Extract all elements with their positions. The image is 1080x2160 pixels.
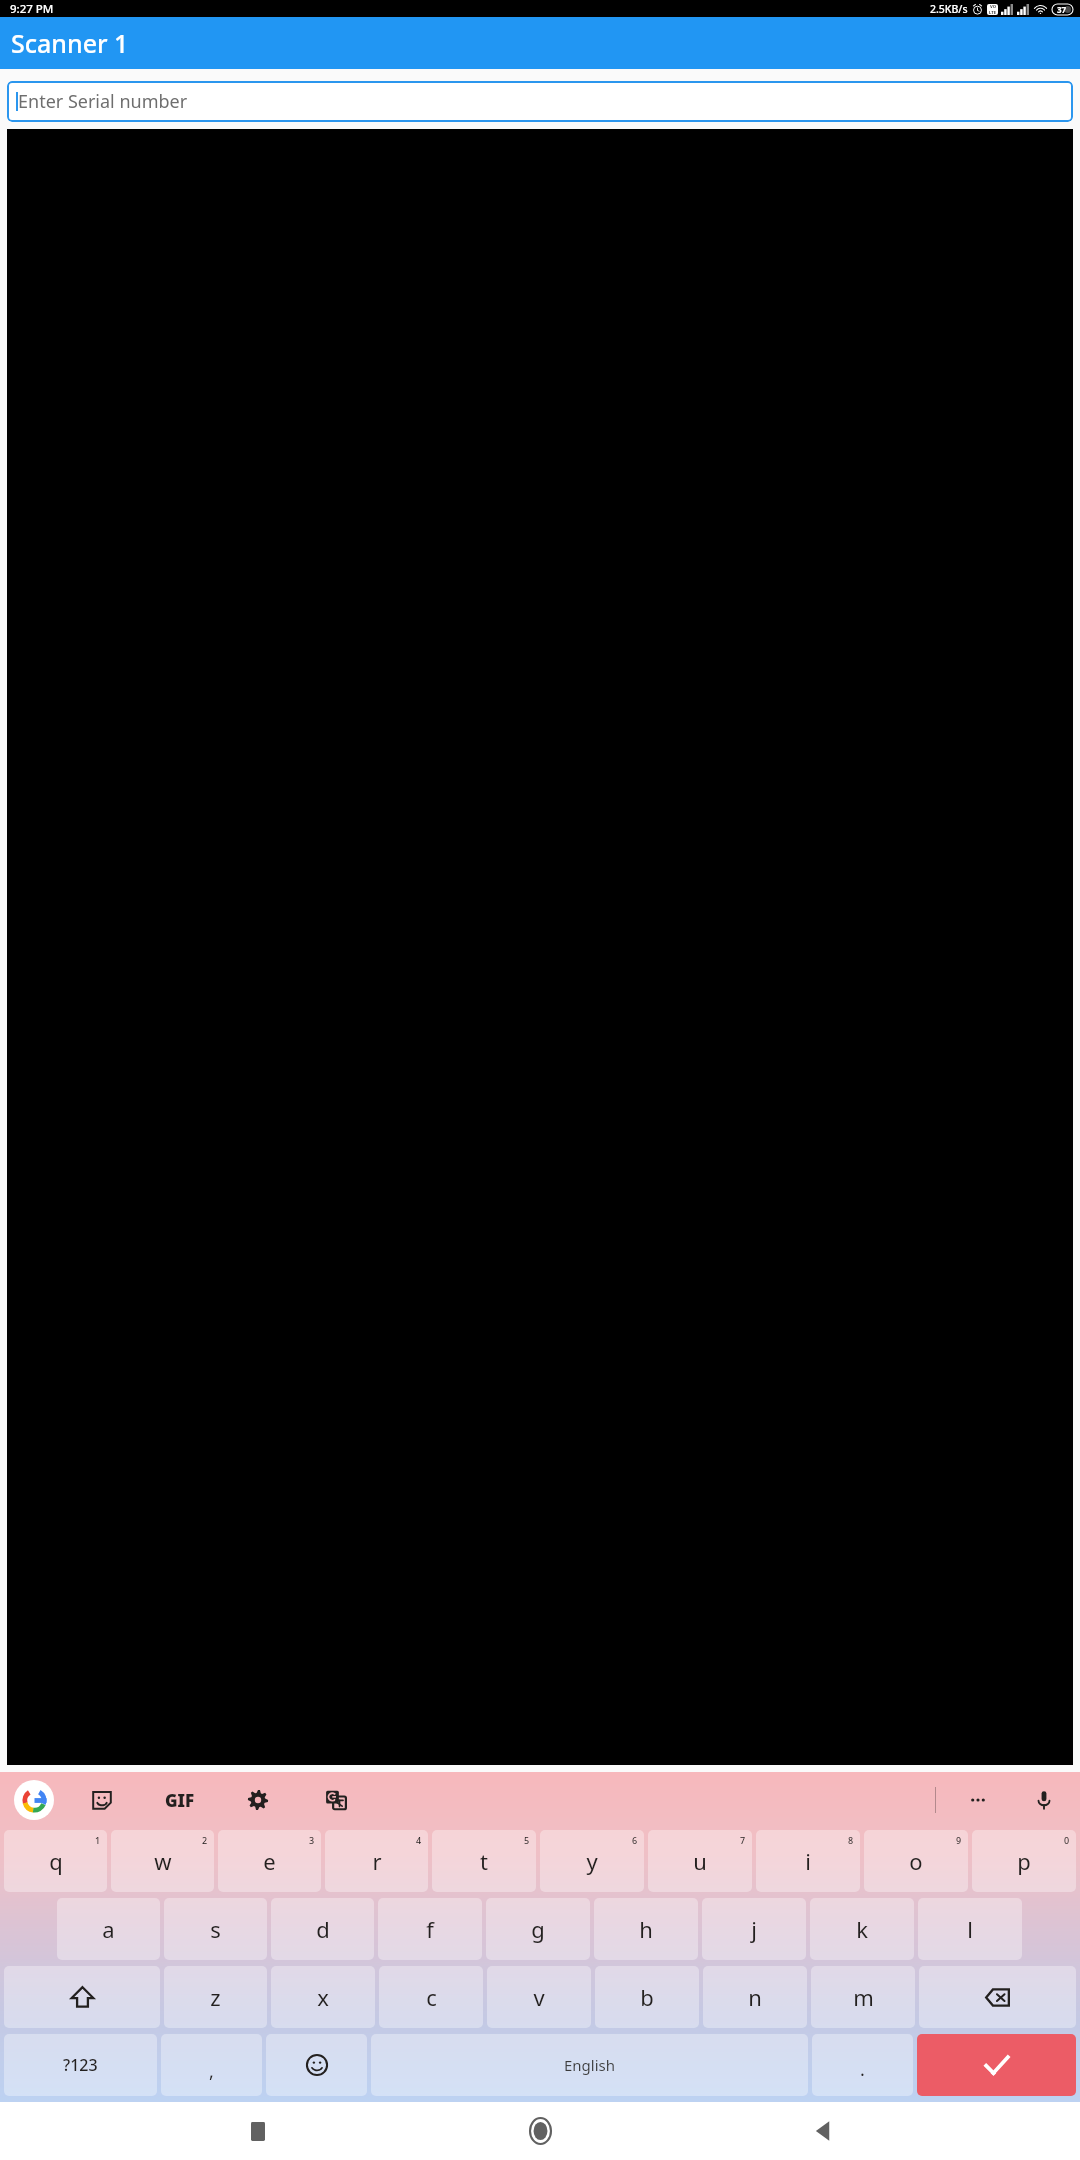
button[interactable]: u — [648, 1830, 752, 1892]
button[interactable]: GIF — [160, 1780, 200, 1820]
staticText: k — [856, 1914, 868, 1944]
button[interactable]: Voice input — [1024, 1780, 1064, 1820]
button[interactable]: y — [540, 1830, 644, 1892]
staticText: Scanner 1 — [11, 26, 129, 60]
button[interactable]: n — [703, 1966, 807, 2028]
staticText: 7 — [740, 1834, 746, 1846]
staticText: 9:27 PM — [10, 1, 54, 17]
staticText: h — [639, 1914, 653, 1944]
staticText: v — [533, 1982, 545, 2012]
button[interactable]: Emoji — [266, 2034, 367, 2096]
button[interactable]: Shift — [4, 1966, 160, 2028]
staticText: q — [49, 1846, 63, 1876]
button[interactable]: Google search — [14, 1780, 54, 1820]
staticText: r — [372, 1846, 382, 1876]
staticText: , — [209, 2059, 214, 2084]
button[interactable]: c — [379, 1966, 483, 2028]
staticText: VO — [990, 4, 996, 10]
button[interactable]: q — [4, 1830, 107, 1892]
button[interactable]: g — [486, 1898, 590, 1960]
staticText: f — [426, 1914, 434, 1944]
staticText: d — [316, 1914, 330, 1944]
button[interactable]: ?123 — [4, 2034, 157, 2096]
staticText: s — [210, 1914, 221, 1944]
staticText: 6 — [632, 1834, 638, 1846]
staticText: o — [909, 1846, 923, 1876]
staticText: 3 — [309, 1834, 315, 1846]
button[interactable]: v — [487, 1966, 591, 2028]
staticText: . — [860, 2057, 865, 2082]
button[interactable]: Back — [798, 2107, 846, 2155]
button[interactable]: , — [161, 2034, 262, 2096]
staticText: p — [1017, 1846, 1031, 1876]
button[interactable]: t — [432, 1830, 536, 1892]
staticText: x — [317, 1982, 329, 2012]
staticText: English — [564, 2055, 616, 2075]
staticText: j — [751, 1914, 757, 1944]
button[interactable]: b — [595, 1966, 699, 2028]
staticText: g — [531, 1914, 545, 1944]
staticText: 5 — [524, 1834, 530, 1846]
button[interactable]: Settings — [238, 1780, 278, 1820]
staticText: 37 — [1057, 4, 1067, 15]
button[interactable]: k — [810, 1898, 914, 1960]
staticText: 1 — [95, 1834, 101, 1846]
staticText: w — [154, 1846, 172, 1876]
button[interactable]: s — [164, 1898, 267, 1960]
staticText: ?123 — [63, 2054, 98, 2076]
staticText: 2.5KB/s — [930, 2, 968, 16]
staticText: 0 — [1064, 1834, 1070, 1846]
button[interactable]: English — [371, 2034, 808, 2096]
staticText: e — [263, 1846, 276, 1876]
button[interactable]: w — [111, 1830, 214, 1892]
button[interactable]: . — [812, 2034, 913, 2096]
staticText: z — [210, 1982, 221, 2012]
button[interactable]: Stickers — [82, 1780, 122, 1820]
button[interactable]: z — [164, 1966, 267, 2028]
staticText: 9 — [956, 1834, 962, 1846]
staticText: 4 — [416, 1834, 422, 1846]
staticText: Enter Serial number — [18, 89, 188, 114]
button[interactable]: Home — [516, 2107, 564, 2155]
staticText: n — [748, 1982, 762, 2012]
button[interactable]: Backspace — [919, 1966, 1076, 2028]
staticText: t — [480, 1846, 488, 1876]
button[interactable]: e — [218, 1830, 321, 1892]
button[interactable]: h — [594, 1898, 698, 1960]
staticText: b — [640, 1982, 654, 2012]
staticText: c — [426, 1982, 437, 2012]
staticText: i — [805, 1846, 811, 1876]
button[interactable]: Translate — [316, 1780, 356, 1820]
staticText: y — [586, 1846, 598, 1876]
staticText: a — [102, 1914, 115, 1944]
button[interactable]: m — [811, 1966, 915, 2028]
button[interactable]: f — [378, 1898, 482, 1960]
staticText: l — [967, 1914, 973, 1944]
staticText: u — [693, 1846, 707, 1876]
staticText: LTE — [989, 10, 997, 15]
button[interactable]: l — [918, 1898, 1022, 1960]
button[interactable]: Recent apps — [234, 2107, 282, 2155]
button[interactable]: Enter Serial number — [7, 81, 1073, 122]
button[interactable]: Enter — [917, 2034, 1076, 2096]
button[interactable]: j — [702, 1898, 806, 1960]
button[interactable]: o — [864, 1830, 968, 1892]
staticText: m — [853, 1982, 874, 2012]
staticText: GIF — [165, 1789, 195, 1812]
button[interactable]: d — [271, 1898, 374, 1960]
button[interactable]: r — [325, 1830, 428, 1892]
staticText: 8 — [848, 1834, 854, 1846]
button[interactable]: i — [756, 1830, 860, 1892]
button[interactable]: p — [972, 1830, 1076, 1892]
staticText: 2 — [202, 1834, 208, 1846]
button[interactable]: a — [57, 1898, 160, 1960]
button[interactable]: More options — [958, 1780, 998, 1820]
button[interactable]: x — [271, 1966, 375, 2028]
